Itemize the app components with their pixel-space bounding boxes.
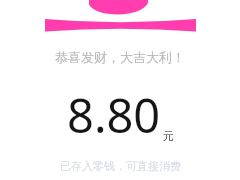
- button[interactable]: 已存入零钱，可直接消费: [56, 159, 185, 173]
- staticText: 8.80: [67, 83, 161, 147]
- staticText: 元: [163, 129, 174, 143]
- button[interactable]: 8.80: [67, 83, 174, 147]
- staticText: 恭喜发财，大吉大利！: [55, 49, 185, 65]
